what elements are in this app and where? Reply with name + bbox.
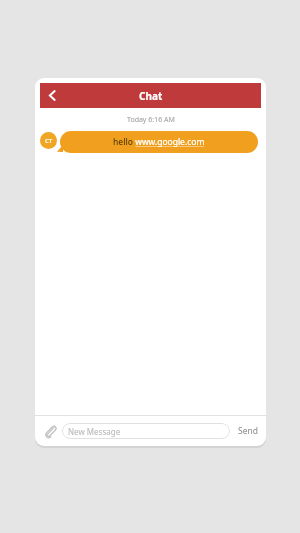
button[interactable]: hello www.google.com: [60, 131, 258, 153]
staticText: CT: [45, 137, 53, 145]
staticText: Today 6:16 AM: [127, 115, 175, 125]
button[interactable]: Contact avatar: [40, 132, 57, 149]
button[interactable]: Back: [40, 83, 64, 108]
staticText: Send: [238, 425, 258, 437]
staticText: hello www.google.com: [113, 136, 205, 148]
staticText: New Message: [68, 426, 121, 437]
button[interactable]: Send: [236, 421, 260, 441]
button[interactable]: New Message: [62, 423, 230, 439]
button[interactable]: Attach file: [41, 422, 59, 440]
staticText: Chat: [139, 89, 163, 103]
